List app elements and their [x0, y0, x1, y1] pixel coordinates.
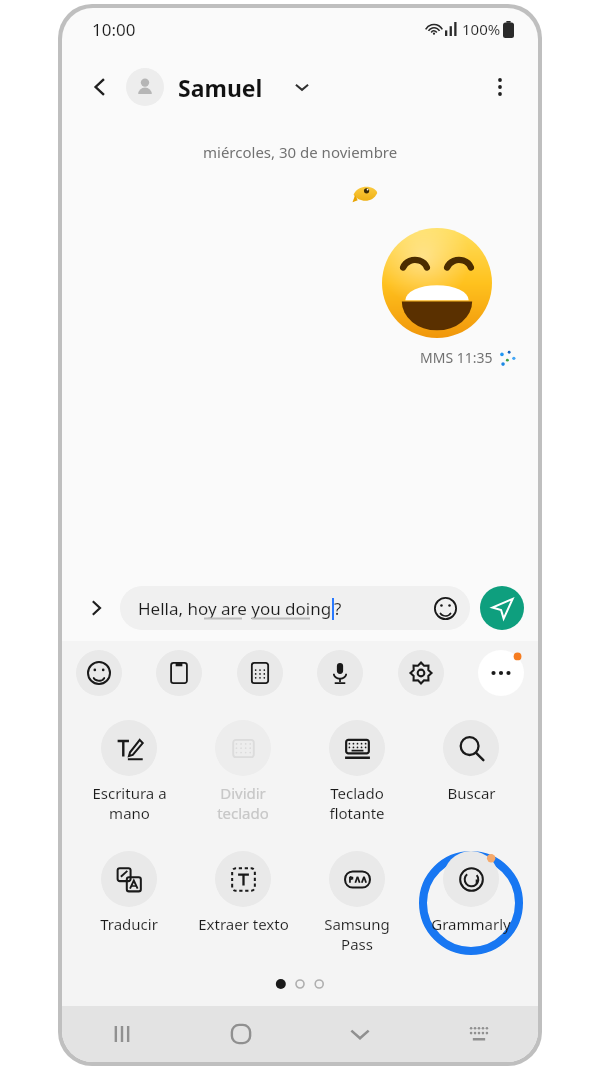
button[interactable]: Back	[80, 67, 120, 107]
button[interactable]: Send	[480, 586, 524, 630]
button[interactable]: Extraer texto	[186, 849, 300, 936]
button[interactable]: Settings	[398, 650, 444, 696]
button[interactable]: Clipboard	[156, 650, 202, 696]
staticText: Samuel	[178, 72, 263, 103]
button[interactable]: Hide keyboard	[300, 1006, 419, 1062]
button[interactable]: Dividir teclado	[186, 718, 300, 825]
button[interactable]: Contact avatar	[126, 68, 164, 106]
button[interactable]: Samsung Pass	[300, 849, 414, 956]
staticText: miércoles, 30 de noviembre	[203, 142, 398, 162]
button[interactable]: Escritura a mano	[72, 718, 186, 825]
button[interactable]: Home	[181, 1006, 300, 1062]
button[interactable]: Grammarly	[431, 849, 511, 936]
staticText: MMS 11:35	[420, 348, 493, 367]
staticText: 10:00	[92, 18, 136, 41]
button[interactable]: Change keyboard	[419, 1006, 538, 1062]
staticText: ?	[334, 597, 342, 620]
staticText: Dividir teclado	[217, 783, 269, 823]
staticText: Extraer texto	[198, 914, 289, 934]
staticText: Grammarly	[431, 914, 511, 934]
button[interactable]: Expand	[285, 70, 319, 104]
button[interactable]: Teclado flotante	[300, 718, 414, 825]
button[interactable]: Buscar	[414, 718, 528, 805]
staticText: Hella, hoy are you doing	[138, 597, 332, 620]
button[interactable]: Keyboard modes	[237, 650, 283, 696]
staticText: Escritura a mano	[92, 783, 167, 823]
staticText: Traducir	[100, 914, 158, 934]
button[interactable]: More options	[480, 67, 520, 107]
staticText: Teclado flotante	[329, 783, 385, 823]
staticText: 100%	[462, 19, 501, 39]
button[interactable]: Voice input	[317, 650, 363, 696]
button[interactable]: Emoji	[430, 593, 460, 623]
button[interactable]: Hella, hoy are you doing	[120, 586, 470, 630]
button[interactable]: Expand actions	[78, 590, 114, 626]
button[interactable]: Recent apps	[62, 1006, 181, 1062]
staticText: Buscar	[447, 783, 496, 803]
button[interactable]: Traducir	[72, 849, 186, 936]
staticText: Samsung Pass	[324, 914, 390, 954]
button[interactable]: Emoji	[76, 650, 122, 696]
button[interactable]: More	[478, 650, 524, 696]
